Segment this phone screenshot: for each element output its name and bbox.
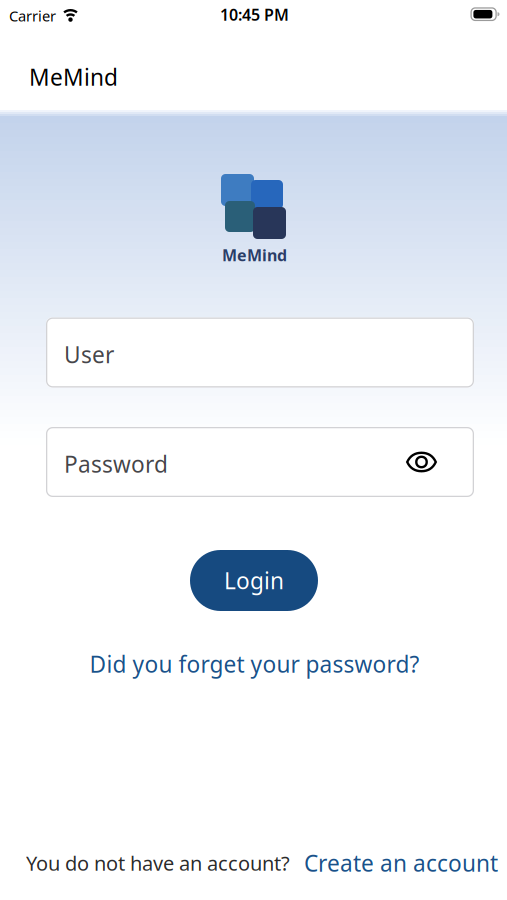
staticText: User (64, 339, 114, 369)
staticText: You do not have an account? (26, 850, 290, 876)
staticText: 10:45 PM (220, 4, 289, 25)
staticText: Login (224, 565, 284, 595)
button[interactable]: Password (46, 427, 474, 497)
button[interactable]: User (46, 317, 474, 387)
staticText: Carrier (9, 6, 56, 25)
staticText: Password (64, 449, 168, 479)
staticText: Create an account (304, 848, 498, 878)
button[interactable]: Show password (406, 452, 437, 472)
button[interactable]: Did you forget your password? (89, 649, 419, 679)
staticText: MeMind (222, 244, 287, 266)
staticText: MeMind (29, 62, 118, 92)
button[interactable]: Create an account (304, 848, 498, 878)
button[interactable]: Login (190, 550, 318, 611)
staticText: Did you forget your password? (89, 649, 419, 679)
